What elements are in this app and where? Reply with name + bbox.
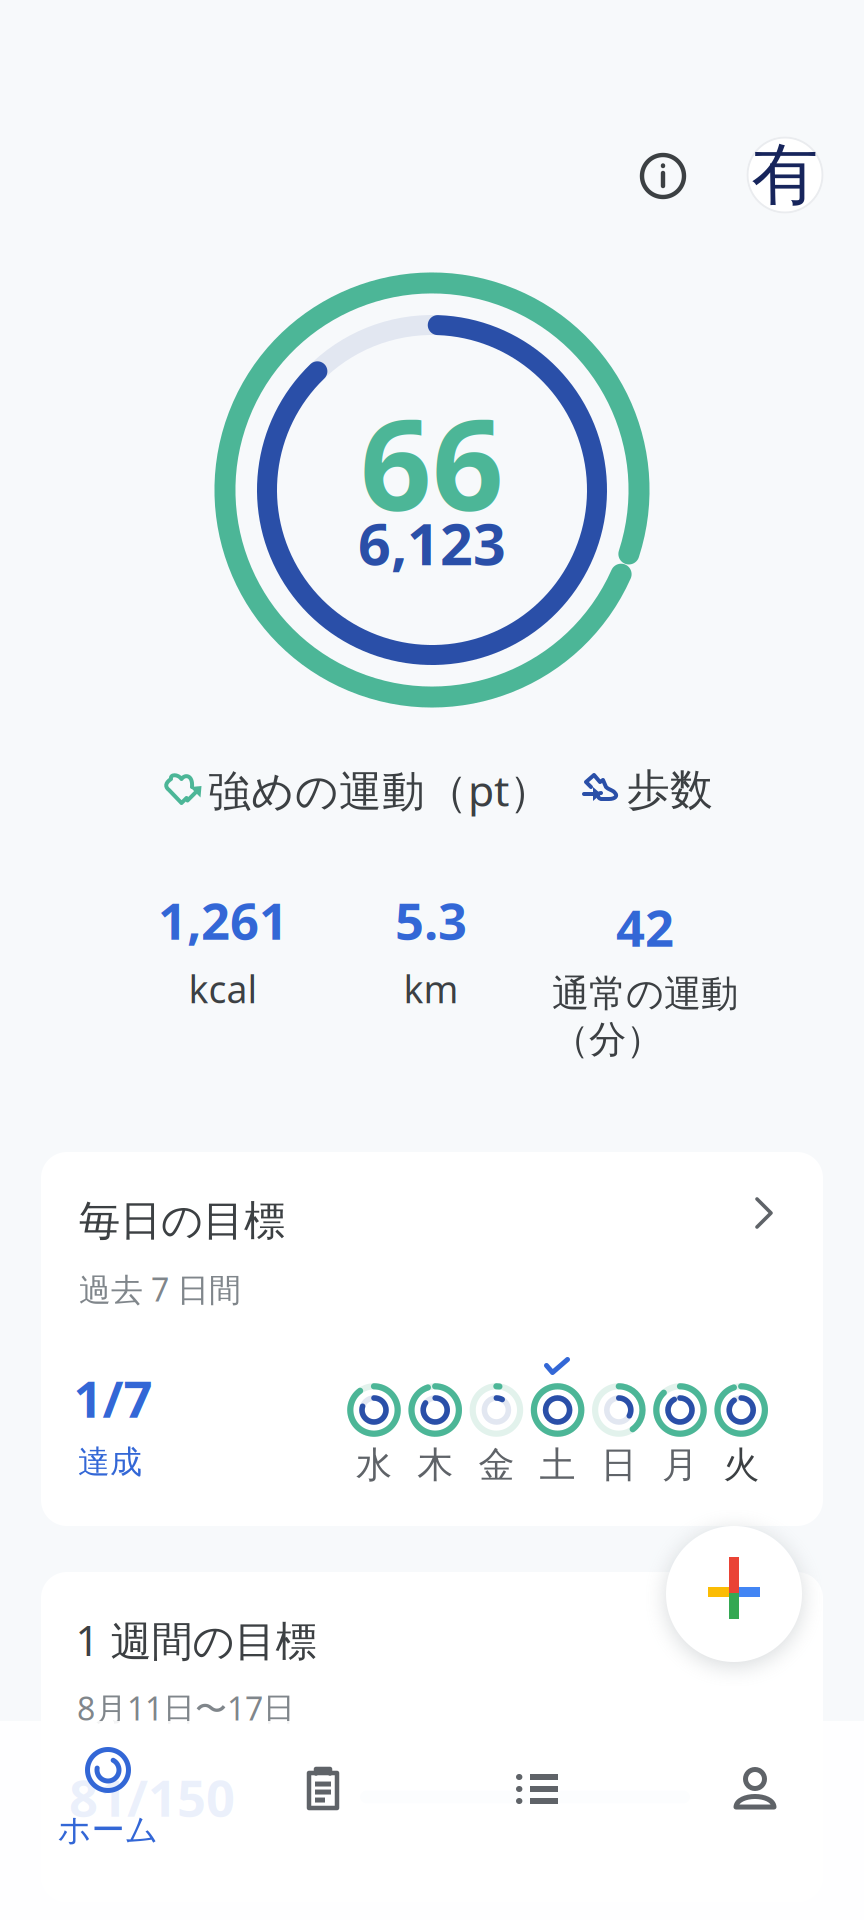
staticText: 毎日の目標 (79, 1196, 285, 1246)
staticText: 月 (662, 1443, 698, 1487)
button[interactable]: 情報 (623, 136, 703, 216)
staticText: kcal (188, 964, 257, 1013)
staticText: 1 週間の目標 (75, 1613, 316, 1667)
staticText: 達成 (78, 1442, 142, 1482)
staticText: 5.3 (395, 887, 467, 954)
staticText: 66 (360, 379, 504, 545)
staticText: ホーム (57, 1809, 158, 1850)
staticText: 日 (601, 1443, 637, 1487)
button[interactable] (41, 1152, 823, 1526)
staticText: 1/7 (73, 1364, 152, 1432)
staticText: 水 (356, 1443, 392, 1487)
staticText: 42 (616, 893, 674, 961)
staticText: km (403, 964, 458, 1013)
staticText: 木 (417, 1443, 453, 1487)
staticText: 通常の運動 （分） (552, 971, 738, 1062)
button[interactable]: プロフィール (741, 131, 829, 219)
staticText: 有 (751, 134, 818, 216)
button[interactable]: 記録 (218, 1722, 428, 1920)
staticText: 6,123 (358, 505, 506, 581)
staticText: 歩数 (627, 764, 713, 816)
button[interactable]: 追加 (666, 1526, 802, 1662)
button[interactable]: ジャーナル (433, 1722, 643, 1920)
button[interactable]: ホーム (3, 1722, 213, 1920)
staticText: 強めの運動（pt） (208, 762, 552, 818)
staticText: 火 (723, 1443, 759, 1487)
button[interactable]: プロフィール (650, 1722, 860, 1920)
staticText: 8月11日〜17日 (77, 1687, 295, 1729)
staticText: 土 (540, 1443, 576, 1487)
staticText: 1,261 (158, 887, 288, 954)
staticText: 金 (478, 1443, 514, 1487)
staticText: 過去 7 日間 (79, 1268, 241, 1310)
staticText: 81/150 (69, 1763, 235, 1831)
